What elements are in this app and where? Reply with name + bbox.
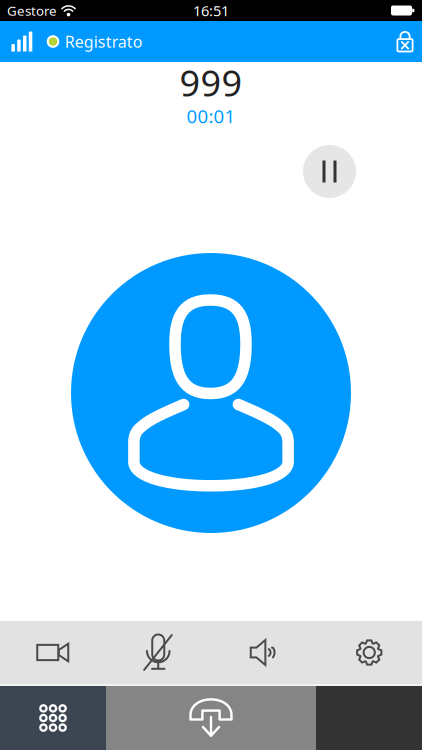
button[interactable]: Hold call (303, 145, 356, 198)
button[interactable]: Settings (316, 621, 422, 684)
button[interactable]: End call (106, 686, 316, 750)
staticText: 16:51 (193, 1, 229, 20)
button[interactable]: Encryption status (395, 29, 415, 53)
button[interactable]: Video (0, 621, 105, 684)
button[interactable]: Keypad (0, 686, 106, 750)
staticText: Registrato (65, 31, 143, 52)
staticText: 00:01 (186, 104, 235, 128)
button[interactable]: Speaker (211, 621, 316, 684)
staticText: 999 (179, 59, 242, 106)
staticText: Gestore (7, 2, 57, 19)
button[interactable]: Mute (105, 621, 211, 684)
